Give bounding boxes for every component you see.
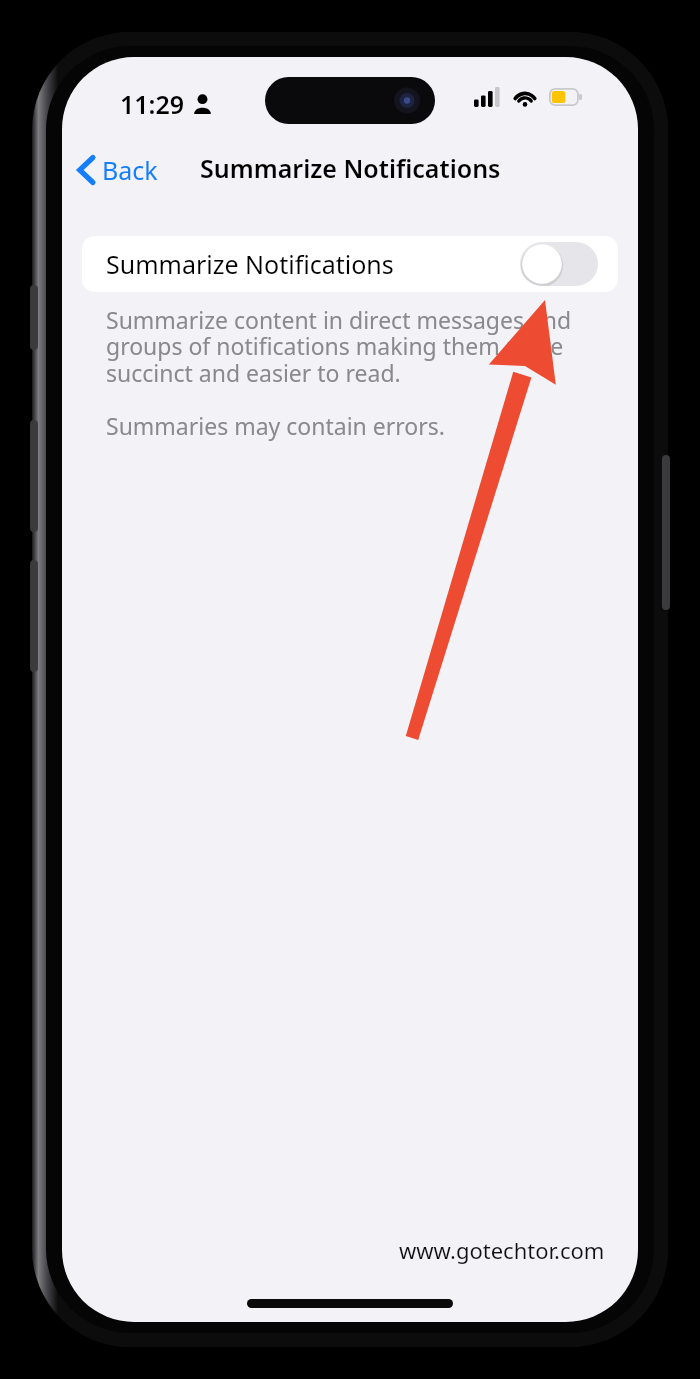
staticText: Summarize Notifications — [106, 247, 394, 281]
staticText: Summaries may contain errors. — [106, 410, 445, 441]
staticText: 11:29 — [120, 87, 185, 121]
button[interactable]: Back — [72, 149, 164, 191]
staticText: Summarize content in direct messages and… — [106, 304, 606, 389]
staticText: www.gotechtor.com — [399, 1235, 605, 1265]
button[interactable]: Summarize Notifications toggle, off — [520, 242, 598, 286]
button[interactable]: Summarize Notifications — [82, 236, 618, 292]
staticText: Summarize Notifications — [200, 151, 501, 185]
staticText: Back — [102, 153, 158, 187]
